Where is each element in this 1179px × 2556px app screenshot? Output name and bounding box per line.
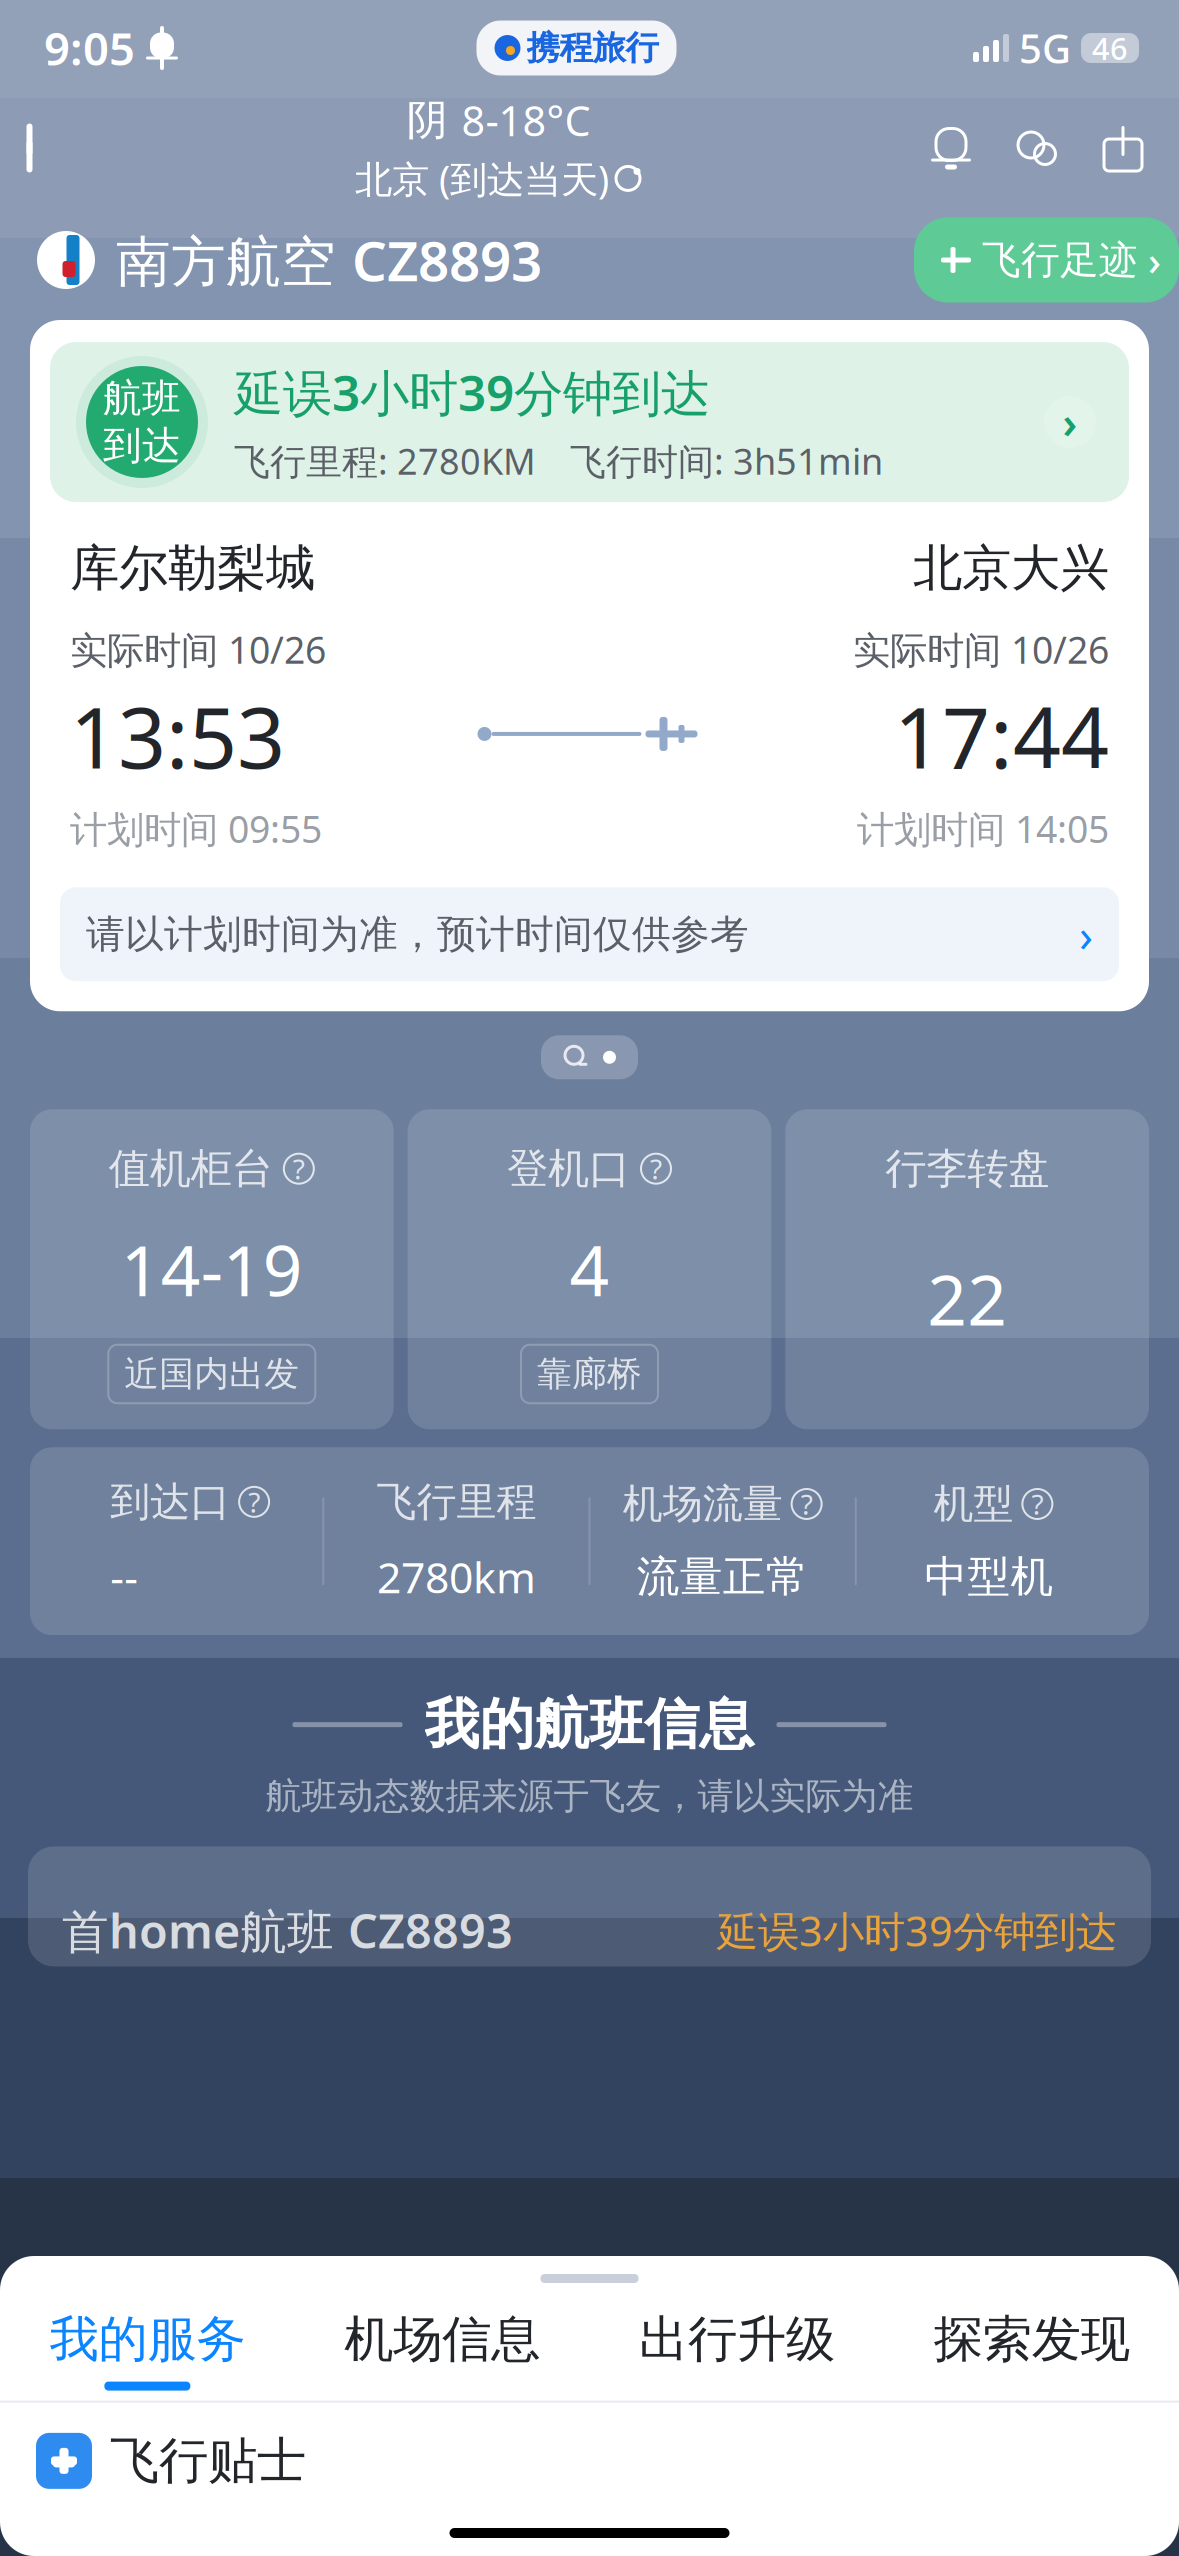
staticText: 4: [569, 1223, 609, 1315]
staticText: 9:05: [44, 18, 135, 78]
staticText: 实际时间 10/26: [853, 625, 1109, 674]
button[interactable]: 值机柜台: [30, 1109, 394, 1429]
button[interactable]: 行李转盘: [785, 1109, 1149, 1429]
staticText: ›: [1079, 904, 1093, 964]
staticText: 中型机: [924, 1551, 1053, 1603]
button[interactable]: 提醒: [925, 122, 977, 174]
staticText: 请以计划时间为准，预计时间仅供参考: [86, 911, 749, 958]
staticText: 到达: [103, 422, 181, 469]
staticText: 计划时间 09:55: [70, 804, 322, 853]
staticText: 8-18°C: [461, 93, 590, 148]
staticText: 计划时间 14:05: [857, 804, 1109, 853]
staticText: 5G: [1019, 21, 1071, 74]
staticText: 航班动态数据来源于飞友，请以实际为准: [265, 1774, 913, 1818]
staticText: 实际时间 10/26: [70, 625, 326, 674]
staticText: 飞行时间: 3h51min: [570, 437, 883, 485]
staticText: 我的服务: [49, 2309, 245, 2370]
staticText: 飞行里程: [376, 1477, 536, 1526]
staticText: 我的航班信息: [424, 1691, 754, 1758]
staticText: ?: [650, 1150, 662, 1187]
staticText: 库尔勒梨城: [70, 538, 315, 599]
staticText: ?: [1031, 1485, 1043, 1523]
staticText: 机场流量: [623, 1479, 783, 1528]
button[interactable]: 航班状态详情: [1035, 387, 1105, 457]
button[interactable]: 客服: [1011, 122, 1063, 174]
staticText: 探索发现: [934, 2309, 1130, 2370]
button[interactable]: 飞行足迹: [914, 217, 1179, 302]
button[interactable]: 分享: [1097, 122, 1149, 174]
staticText: 机场信息: [344, 2309, 540, 2370]
staticText: 22: [927, 1253, 1007, 1345]
staticText: ›: [1148, 233, 1161, 286]
staticText: 靠廊桥: [537, 1353, 642, 1395]
button[interactable]: 登机口: [408, 1109, 771, 1429]
staticText: 近国内出发: [124, 1353, 299, 1395]
staticText: 飞行足迹: [982, 236, 1138, 284]
staticText: ›: [1062, 394, 1077, 450]
staticText: 航班: [103, 374, 181, 422]
staticText: 机型: [933, 1479, 1013, 1528]
staticText: 14-19: [121, 1223, 303, 1315]
staticText: 阴: [406, 95, 447, 146]
staticText: ?: [248, 1483, 260, 1520]
staticText: 行李转盘: [885, 1143, 1049, 1194]
button[interactable]: 我的服务: [0, 2309, 295, 2401]
staticText: 延误3小时39分钟到达: [234, 359, 710, 425]
staticText: 2780km: [377, 1548, 536, 1605]
staticText: 到达口: [110, 1477, 230, 1526]
staticText: 13:53: [70, 680, 285, 792]
staticText: 延误3小时39分钟到达: [717, 1903, 1117, 1958]
button[interactable]: 请以计划时间为准，预计时间仅供参考: [60, 887, 1119, 981]
staticText: 北京 (到达当天): [355, 154, 609, 203]
staticText: 出行升级: [639, 2309, 835, 2370]
button[interactable]: 出行升级: [589, 2309, 884, 2401]
staticText: 飞行里程: 2780KM: [234, 437, 536, 485]
staticText: 飞行贴士: [110, 2431, 306, 2491]
staticText: 南方航空 CZ8893: [116, 224, 542, 296]
staticText: --: [110, 1548, 138, 1605]
button[interactable]: 机场信息: [295, 2309, 590, 2401]
staticText: 17:44: [894, 680, 1109, 792]
staticText: 值机柜台: [109, 1143, 273, 1194]
staticText: 流量正常: [637, 1551, 809, 1603]
staticText: 北京大兴: [913, 538, 1109, 599]
staticText: 46: [1092, 28, 1128, 68]
staticText: 携程旅行: [526, 27, 658, 68]
button[interactable]: 返回: [0, 112, 72, 184]
staticText: ?: [801, 1485, 813, 1523]
staticText: ?: [293, 1150, 305, 1187]
staticText: 首home航班 CZ8893: [62, 1899, 513, 1961]
staticText: 登机口: [507, 1143, 630, 1194]
button[interactable]: 探索发现: [884, 2309, 1179, 2401]
